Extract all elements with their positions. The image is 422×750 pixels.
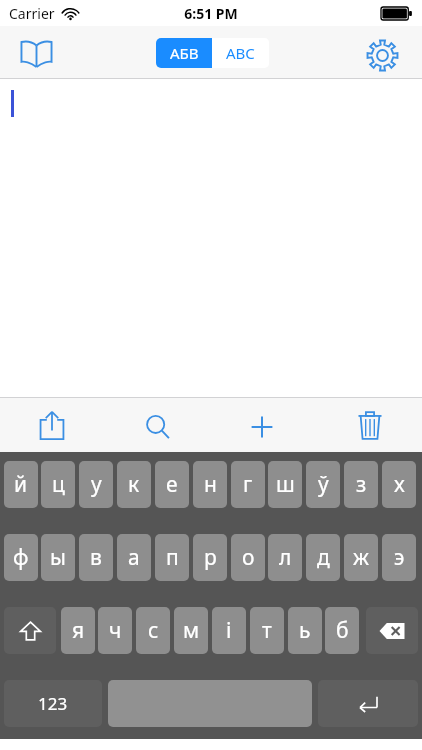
- button[interactable]: АБВ: [156, 38, 212, 68]
- staticText: 6:51 PM: [0, 4, 422, 23]
- button[interactable]: Search: [137, 406, 179, 448]
- staticText: ABC: [226, 43, 255, 63]
- staticText: к: [128, 470, 140, 499]
- staticText: б: [336, 616, 349, 645]
- button[interactable]: д: [306, 534, 340, 581]
- staticText: н: [204, 470, 217, 499]
- staticText: л: [279, 543, 292, 572]
- button[interactable]: з: [344, 461, 378, 508]
- button[interactable]: т: [250, 607, 284, 654]
- staticText: а: [128, 543, 140, 572]
- button[interactable]: а: [117, 534, 151, 581]
- button[interactable]: ц: [41, 461, 75, 508]
- button[interactable]: Add: [241, 406, 283, 448]
- staticText: м: [183, 616, 200, 645]
- staticText: в: [90, 543, 102, 572]
- staticText: г: [243, 470, 253, 499]
- button[interactable]: р: [193, 534, 227, 581]
- button[interactable]: в: [79, 534, 113, 581]
- button[interactable]: і: [212, 607, 246, 654]
- staticText: 123: [38, 692, 68, 715]
- staticText: е: [166, 470, 178, 499]
- button[interactable]: л: [268, 534, 302, 581]
- staticText: д: [317, 543, 330, 572]
- button[interactable]: Settings: [360, 33, 404, 77]
- button[interactable]: Return: [318, 680, 418, 727]
- button[interactable]: ABC: [212, 38, 269, 68]
- staticText: ц: [52, 470, 65, 499]
- button[interactable]: 123: [4, 680, 102, 727]
- button[interactable]: у: [79, 461, 113, 508]
- button[interactable]: г: [231, 461, 265, 508]
- staticText: з: [356, 470, 367, 499]
- staticText: ф: [13, 543, 29, 572]
- button[interactable]: е: [155, 461, 189, 508]
- button[interactable]: Backspace: [366, 607, 418, 654]
- button[interactable]: о: [231, 534, 265, 581]
- button[interactable]: Delete: [349, 404, 391, 446]
- button[interactable]: ф: [4, 534, 38, 581]
- button[interactable]: х: [382, 461, 416, 508]
- staticText: э: [394, 543, 405, 572]
- button[interactable]: ш: [268, 461, 302, 508]
- staticText: х: [394, 470, 405, 499]
- staticText: у: [91, 470, 102, 499]
- button[interactable]: ж: [344, 534, 378, 581]
- staticText: о: [242, 543, 255, 572]
- button[interactable]: ь: [288, 607, 322, 654]
- staticText: ж: [353, 543, 369, 572]
- button[interactable]: б: [325, 607, 359, 654]
- staticText: і: [226, 616, 232, 645]
- staticText: Carrier: [9, 4, 55, 23]
- button[interactable]: н: [193, 461, 227, 508]
- button[interactable]: Dictionary: [16, 34, 56, 74]
- staticText: ш: [276, 470, 295, 499]
- button[interactable]: э: [382, 534, 416, 581]
- staticText: я: [72, 616, 85, 645]
- button[interactable]: к: [117, 461, 151, 508]
- staticText: ў: [318, 470, 329, 499]
- staticText: п: [166, 543, 179, 572]
- button[interactable]: м: [174, 607, 208, 654]
- staticText: ы: [50, 543, 66, 572]
- button[interactable]: ч: [98, 607, 132, 654]
- button[interactable]: ў: [306, 461, 340, 508]
- staticText: ч: [109, 616, 122, 645]
- staticText: й: [14, 470, 28, 499]
- button[interactable]: с: [136, 607, 170, 654]
- staticText: р: [204, 543, 217, 572]
- button[interactable]: Shift: [4, 607, 56, 654]
- button[interactable]: п: [155, 534, 189, 581]
- staticText: ь: [299, 616, 311, 645]
- staticText: с: [148, 616, 159, 645]
- staticText: т: [262, 616, 272, 645]
- button[interactable]: я: [61, 607, 95, 654]
- button[interactable]: ы: [41, 534, 75, 581]
- button[interactable]: Share: [31, 404, 73, 446]
- button[interactable]: й: [4, 461, 38, 508]
- staticText: АБВ: [170, 43, 199, 63]
